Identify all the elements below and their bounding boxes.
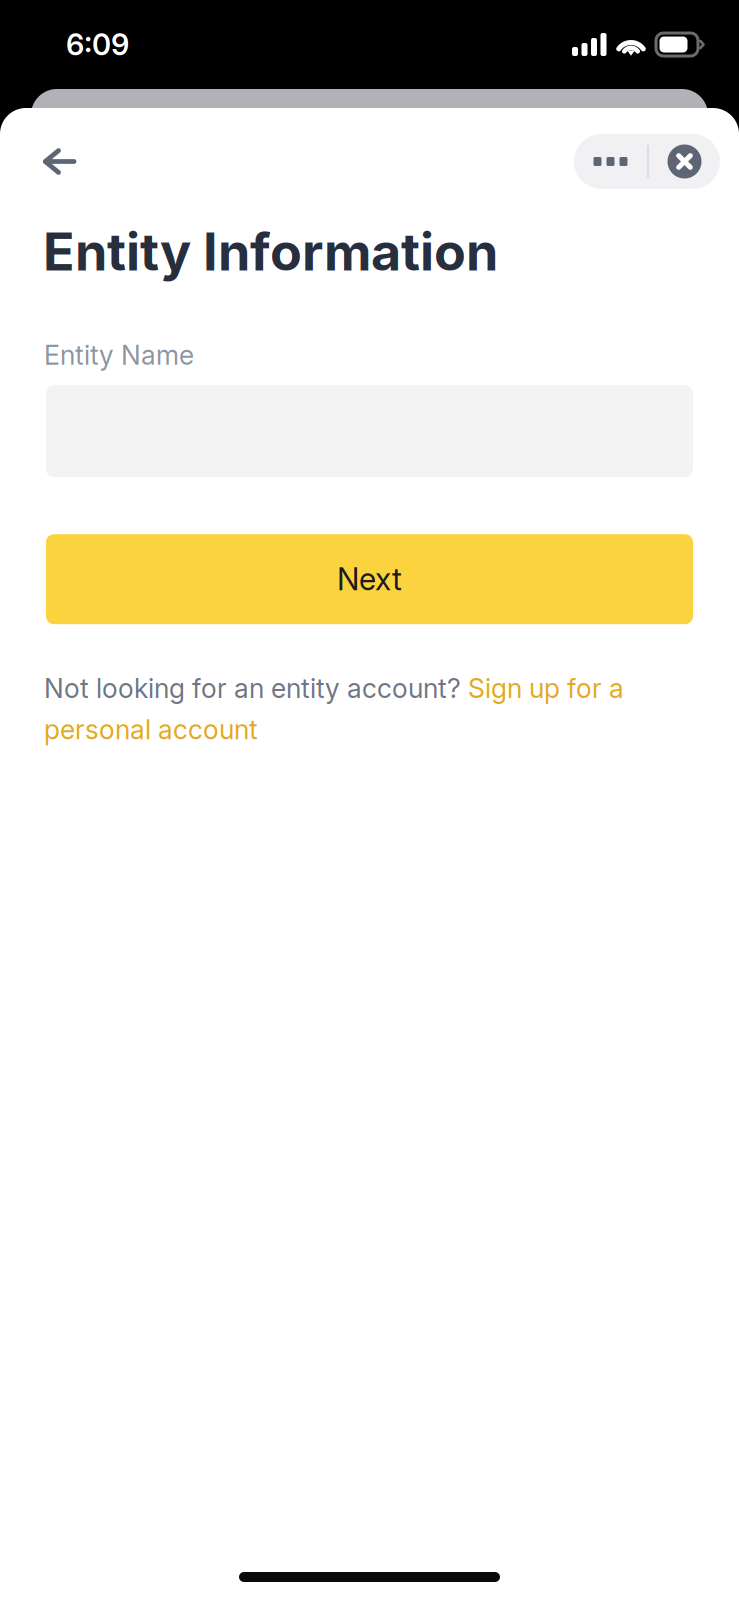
button[interactable]: Back: [42, 133, 112, 189]
staticText: Next: [337, 561, 402, 598]
staticText: Sign up for a: [468, 672, 624, 704]
button[interactable]: Sign up for a: [468, 672, 624, 704]
staticText: personal account: [44, 713, 258, 746]
button[interactable]: personal account: [44, 713, 258, 746]
button[interactable]: More options: [574, 134, 647, 189]
staticText: Not looking for an entity account?: [44, 672, 468, 704]
staticText: Entity Information: [43, 220, 498, 283]
button[interactable]: Next: [46, 534, 693, 624]
staticText: 6:09: [66, 27, 129, 62]
button[interactable]: Close: [649, 134, 720, 189]
staticText: Entity Name: [44, 339, 194, 371]
